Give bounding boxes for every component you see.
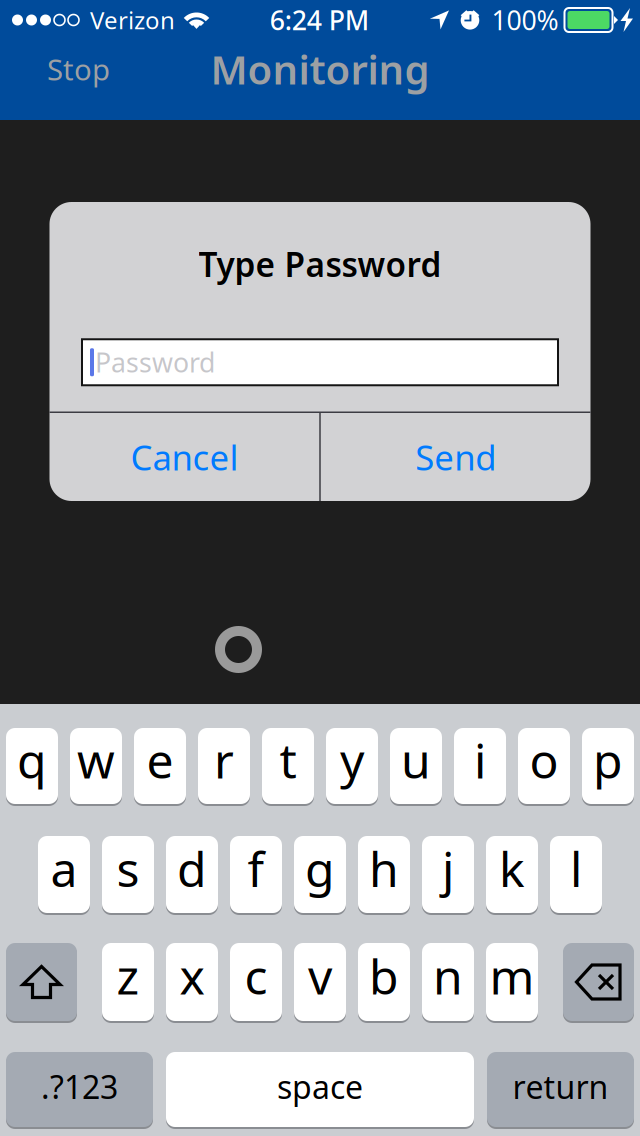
staticText: c xyxy=(244,944,267,1008)
staticText: r xyxy=(214,728,234,792)
staticText: m xyxy=(489,944,534,1008)
staticText: Cancel xyxy=(130,434,238,480)
button[interactable]: w xyxy=(70,728,122,804)
staticText: j xyxy=(442,837,454,900)
staticText: b xyxy=(369,944,399,1008)
button[interactable]: f xyxy=(230,836,282,913)
staticText: 100% xyxy=(491,2,558,38)
staticText: u xyxy=(401,728,431,792)
staticText: Verizon xyxy=(90,4,175,36)
staticText: i xyxy=(474,728,486,792)
staticText: Type Password xyxy=(198,242,441,286)
button[interactable]: b xyxy=(358,943,410,1021)
button[interactable]: Send xyxy=(321,413,591,501)
button[interactable]: h xyxy=(358,836,410,913)
staticText: Monitoring xyxy=(210,42,429,95)
button[interactable]: v xyxy=(294,943,346,1021)
staticText: .?123 xyxy=(41,1065,118,1108)
staticText: h xyxy=(369,837,399,900)
button[interactable]: c xyxy=(230,943,282,1021)
button[interactable]: k xyxy=(486,836,538,913)
button[interactable]: p xyxy=(582,728,634,804)
button[interactable]: e xyxy=(134,728,186,804)
staticText: a xyxy=(50,837,77,900)
staticText: f xyxy=(247,837,264,900)
button[interactable]: m xyxy=(486,943,538,1021)
staticText: space xyxy=(277,1065,363,1108)
button[interactable]: z xyxy=(102,943,154,1021)
staticText: y xyxy=(340,728,364,792)
staticText: Send xyxy=(415,434,496,480)
button[interactable]: u xyxy=(390,728,442,804)
staticText: x xyxy=(179,944,204,1008)
button[interactable]: Delete xyxy=(563,943,634,1021)
staticText: return xyxy=(512,1065,608,1108)
button[interactable]: r xyxy=(198,728,250,804)
staticText: e xyxy=(146,728,173,792)
staticText: n xyxy=(433,944,463,1008)
button[interactable]: Cancel xyxy=(49,413,319,501)
button[interactable]: q xyxy=(6,728,58,804)
staticText: Password xyxy=(95,345,215,380)
button[interactable]: Stop xyxy=(31,40,126,98)
button[interactable]: j xyxy=(422,836,474,913)
staticText: w xyxy=(77,728,115,792)
button[interactable]: return xyxy=(487,1052,634,1127)
button[interactable]: Password xyxy=(82,339,558,385)
button[interactable]: o xyxy=(518,728,570,804)
button[interactable]: n xyxy=(422,943,474,1021)
button[interactable]: s xyxy=(102,836,154,913)
button[interactable]: g xyxy=(294,836,346,913)
button[interactable]: Shift xyxy=(6,943,77,1021)
button[interactable]: .?123 xyxy=(6,1052,153,1127)
button[interactable]: space xyxy=(166,1052,474,1127)
button[interactable]: d xyxy=(166,836,218,913)
staticText: o xyxy=(529,728,558,792)
button[interactable]: a xyxy=(38,836,90,913)
staticText: k xyxy=(499,837,525,900)
staticText: z xyxy=(116,944,139,1008)
staticText: l xyxy=(570,837,582,900)
staticText: Stop xyxy=(47,49,110,88)
button[interactable]: x xyxy=(166,943,218,1021)
staticText: 6:24 PM xyxy=(270,2,369,38)
staticText: g xyxy=(305,837,335,900)
staticText: d xyxy=(177,837,207,900)
staticText: q xyxy=(17,728,47,792)
button[interactable]: l xyxy=(550,836,602,913)
button[interactable]: i xyxy=(454,728,506,804)
staticText: s xyxy=(116,837,139,900)
staticText: t xyxy=(279,728,296,792)
staticText: p xyxy=(593,728,623,792)
button[interactable]: t xyxy=(262,728,314,804)
staticText: v xyxy=(308,944,332,1008)
button[interactable]: y xyxy=(326,728,378,804)
